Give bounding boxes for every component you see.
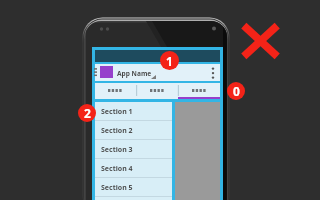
staticText: Section 3 [101,145,133,155]
staticText: Section 2 [101,126,133,136]
button[interactable]: Section 3 [95,140,172,159]
staticText: 2 [84,105,91,121]
button[interactable]: Section 1 [95,102,172,121]
button[interactable]: Navigation drawer [95,64,220,81]
button[interactable]: Section 4 [95,159,172,178]
staticText: Section 1 [101,107,133,117]
button[interactable] [136,83,178,99]
button[interactable] [95,83,136,99]
button[interactable]: Section 5 [95,178,172,197]
staticText: App Name [117,69,152,78]
staticText: 1 [166,53,173,69]
button[interactable] [178,83,220,99]
button[interactable]: Navigation drawer [94,68,97,76]
staticText: Section 5 [101,183,133,193]
staticText: 0 [233,83,240,99]
button[interactable]: Section 2 [95,121,172,140]
staticText: Section 4 [101,164,133,174]
button[interactable]: More options [211,67,215,79]
